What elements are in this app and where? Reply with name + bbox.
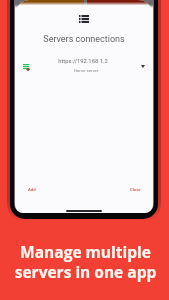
button[interactable]: Add <box>24 184 40 195</box>
staticText: https://192.168.1.2 <box>15 58 152 65</box>
staticText: Home server <box>17 68 153 73</box>
staticText: Manage multiple servers in one app <box>1 241 169 282</box>
staticText: Add <box>28 187 36 192</box>
button[interactable]: Close <box>126 184 145 195</box>
button[interactable]: Menu <box>73 8 94 29</box>
button[interactable]: https://192.168.1.2 <box>15 52 153 76</box>
staticText: Servers connections <box>15 34 153 45</box>
staticText: Close <box>130 187 141 192</box>
